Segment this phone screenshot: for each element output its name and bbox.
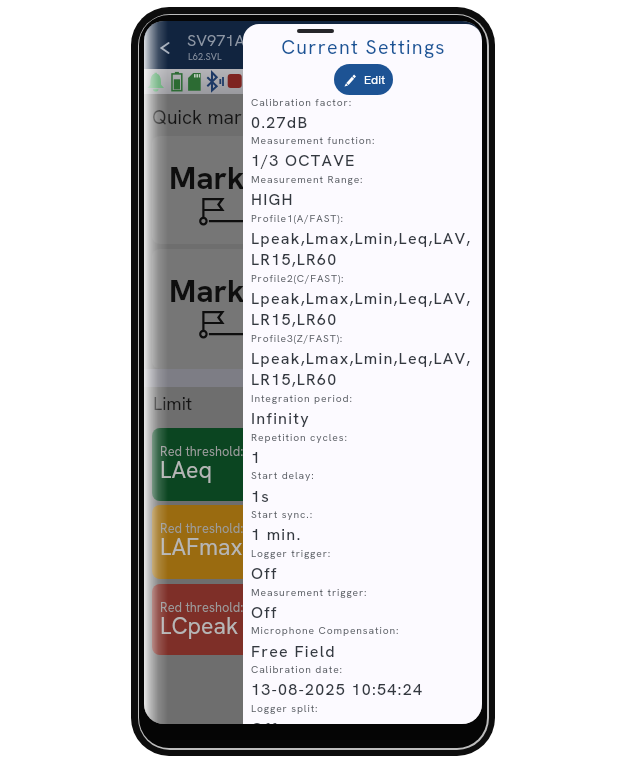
staticText: Edit	[364, 72, 386, 88]
staticText: 1	[251, 447, 262, 468]
button[interactable]: Back	[151, 34, 179, 62]
staticText: Integration period:	[251, 392, 353, 405]
staticText: Calibration date:	[251, 663, 343, 676]
staticText: Off	[251, 602, 278, 623]
staticText: 1/3 OCTAVE	[251, 150, 356, 171]
staticText: LAFmax	[160, 532, 243, 562]
staticText: Quick marker	[152, 105, 271, 130]
staticText: Off	[251, 563, 278, 584]
staticText: Measurement Range:	[251, 173, 364, 186]
staticText: Off	[251, 718, 278, 724]
staticText: Lpeak,Lmax,Lmin,Leq,LAV, LR15,LR60	[251, 228, 472, 270]
button[interactable]: Red threshold:	[152, 428, 475, 501]
staticText: Free Field	[251, 641, 336, 662]
staticText: 1 min.	[251, 524, 302, 545]
staticText: Start sync.:	[251, 508, 314, 521]
staticText: 13-08-2025 10:54:24	[251, 679, 424, 700]
button[interactable]: Marker	[152, 249, 475, 369]
staticText: LCpeak	[160, 611, 239, 641]
staticText: Limit	[153, 391, 193, 415]
staticText: Logger trigger:	[251, 547, 332, 560]
button[interactable]: Red threshold:	[152, 584, 475, 655]
button[interactable]: Marker	[152, 136, 475, 244]
button[interactable]: Edit	[334, 64, 393, 95]
staticText: L62.SVL	[188, 51, 222, 63]
staticText: 1s	[251, 486, 271, 507]
staticText: SV971A	[187, 30, 245, 51]
staticText: Marker	[169, 157, 276, 198]
staticText: Red threshold:	[160, 599, 244, 616]
staticText: Profile3(Z/FAST):	[251, 332, 344, 345]
staticText: HIGH	[251, 189, 294, 210]
staticText: Measurement function:	[251, 134, 376, 147]
staticText: Red threshold:	[160, 520, 244, 537]
staticText: Calibration factor:	[251, 96, 353, 109]
staticText: Profile1(A/FAST):	[251, 212, 344, 225]
staticText: Marker	[169, 270, 276, 311]
staticText: Profile2(C/FAST):	[251, 272, 345, 285]
staticText: Microphone Compensation:	[251, 624, 400, 637]
staticText: Logger split:	[251, 702, 319, 715]
staticText: Start delay:	[251, 469, 315, 482]
staticText: Infinity	[251, 408, 310, 429]
staticText: Lpeak,Lmax,Lmin,Leq,LAV, LR15,LR60	[251, 348, 472, 390]
staticText: LAeq	[160, 455, 212, 485]
staticText: 0.27dB	[251, 112, 309, 133]
staticText: Lpeak,Lmax,Lmin,Leq,LAV, LR15,LR60	[251, 288, 472, 330]
staticText: Red threshold:	[160, 443, 244, 460]
staticText: Repetition cycles:	[251, 431, 348, 444]
staticText: Measurement trigger:	[251, 586, 368, 599]
staticText: Current Settings	[244, 34, 482, 60]
button[interactable]: Red threshold:	[152, 505, 475, 579]
